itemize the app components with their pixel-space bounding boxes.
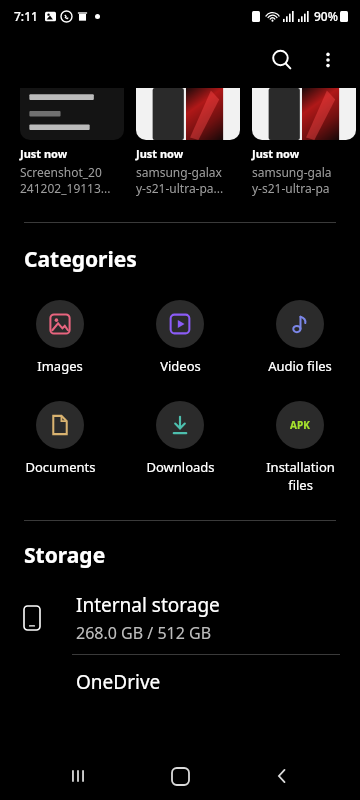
- staticText: Categories: [24, 245, 137, 274]
- button[interactable]: Just now: [252, 88, 356, 196]
- staticText: Internal storage: [76, 592, 220, 618]
- staticText: Screenshot_20 241202_19113...: [20, 164, 111, 196]
- staticText: Audio files: [268, 357, 332, 375]
- staticText: samsung-galax y-s21-ultra-pa...: [136, 164, 224, 196]
- button[interactable]: Just now: [20, 88, 124, 196]
- staticText: APK: [290, 418, 310, 432]
- staticText: OneDrive: [76, 669, 161, 695]
- staticText: Downloads: [146, 458, 215, 476]
- button[interactable]: More options: [306, 38, 350, 82]
- staticText: 268.0 GB / 512 GB: [76, 622, 212, 644]
- staticText: samsung-gala y-s21-ultra-pa: [252, 164, 332, 196]
- button[interactable]: Documents: [0, 401, 120, 476]
- button[interactable]: Audio files: [240, 300, 360, 375]
- staticText: Just now: [20, 146, 68, 161]
- staticText: Storage: [24, 541, 106, 570]
- button[interactable]: Images: [0, 300, 120, 375]
- button[interactable]: Search: [258, 36, 306, 84]
- staticText: Just now: [252, 146, 300, 161]
- button[interactable]: Back: [258, 752, 306, 800]
- staticText: Videos: [160, 357, 201, 375]
- button[interactable]: Recent apps: [54, 752, 102, 800]
- staticText: Just now: [136, 146, 184, 161]
- button[interactable]: Just now: [136, 88, 240, 196]
- staticText: Installation files: [266, 458, 335, 494]
- staticText: Documents: [25, 458, 96, 476]
- button[interactable]: Downloads: [120, 401, 240, 476]
- button[interactable]: Internal storage: [0, 592, 360, 644]
- staticText: 90%: [314, 8, 338, 24]
- staticText: 7:11: [14, 8, 38, 24]
- staticText: Images: [37, 357, 83, 375]
- button[interactable]: Videos: [120, 300, 240, 375]
- button[interactable]: APK: [240, 401, 360, 494]
- button[interactable]: Home: [156, 752, 204, 800]
